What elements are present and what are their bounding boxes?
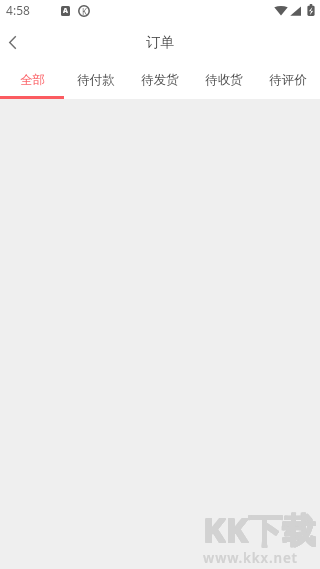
staticText: KK下载 <box>203 507 317 553</box>
staticText: KK下载 <box>202 507 316 553</box>
button[interactable]: 待发货 <box>128 62 192 99</box>
staticText: 待发货 <box>141 72 179 88</box>
staticText: KK下载 <box>203 507 317 553</box>
staticText: A <box>63 6 68 16</box>
staticText: KK下载 <box>202 506 316 552</box>
staticText: 4:58 <box>6 2 30 18</box>
staticText: 订单 <box>146 33 175 51</box>
staticText: K <box>82 6 87 17</box>
staticText: 待评价 <box>269 72 307 88</box>
staticText: KK下载 <box>202 507 316 553</box>
button[interactable]: 待付款 <box>64 62 128 99</box>
staticText: KK下载 <box>203 506 317 552</box>
button[interactable]: 全部 <box>0 62 64 99</box>
staticText: 待收货 <box>205 72 243 88</box>
button[interactable]: 待收货 <box>192 62 256 99</box>
staticText: KK下载 <box>203 507 317 553</box>
staticText: KK下载 <box>203 507 317 553</box>
button[interactable]: 待评价 <box>256 62 320 99</box>
button[interactable]: Back <box>0 24 32 62</box>
staticText: KK下载 <box>203 506 317 552</box>
staticText: 待付款 <box>77 72 115 88</box>
staticText: 全部 <box>20 72 45 88</box>
staticText: www.kkx.net <box>203 549 298 567</box>
